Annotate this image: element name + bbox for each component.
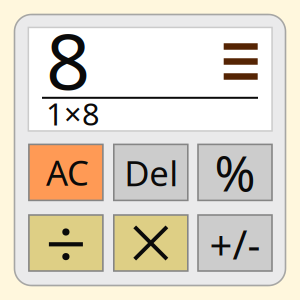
- button[interactable]: Divide: [29, 215, 103, 271]
- staticText: %: [214, 140, 255, 205]
- button[interactable]: Percent: [198, 144, 272, 200]
- staticText: 1×8: [46, 93, 100, 134]
- staticText: 8: [46, 8, 90, 111]
- button[interactable]: Delete: [114, 144, 188, 200]
- button[interactable]: History: [220, 40, 262, 82]
- staticText: Del: [124, 150, 178, 196]
- button[interactable]: Plus minus: [198, 215, 272, 271]
- staticText: AC: [46, 149, 89, 195]
- button[interactable]: All clear: [29, 144, 103, 200]
- button[interactable]: Multiply: [114, 215, 188, 271]
- staticText: +/-: [209, 217, 260, 270]
